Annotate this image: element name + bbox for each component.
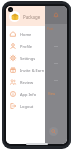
staticText: Logout (20, 104, 34, 109)
button[interactable]: Profile (6, 40, 45, 52)
staticText: App Info (20, 92, 37, 97)
button[interactable]: Logout (6, 100, 45, 112)
staticText: Past (47, 27, 54, 31)
staticText: Profile (20, 44, 33, 49)
button[interactable]: Review Orders (6, 76, 45, 88)
staticText: Package (23, 14, 41, 20)
button[interactable] (45, 44, 67, 49)
button[interactable] (45, 78, 67, 83)
button[interactable]: Notifications (45, 6, 67, 24)
button[interactable]: App Info (6, 88, 45, 100)
staticText: Review Orders (20, 80, 45, 85)
button[interactable]: Home (6, 28, 45, 40)
button[interactable]: Search (49, 127, 58, 136)
staticText: Invite & Earn (20, 68, 45, 73)
staticText: View (48, 92, 56, 96)
staticText: Home (20, 32, 32, 37)
button[interactable]: Package (6, 6, 45, 26)
button[interactable]: Settings (6, 52, 45, 64)
staticText: Settings (20, 56, 36, 61)
button[interactable] (45, 61, 67, 66)
button[interactable]: Invite & Earn (6, 64, 45, 76)
